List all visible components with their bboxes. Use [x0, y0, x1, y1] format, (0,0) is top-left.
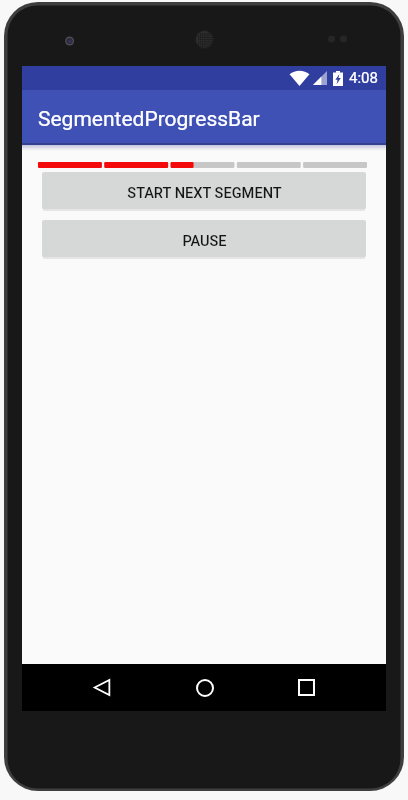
- staticText: 4:08: [349, 69, 378, 87]
- button[interactable]: START NEXT SEGMENT: [42, 172, 366, 209]
- button[interactable]: PAUSE: [42, 220, 366, 257]
- staticText: START NEXT SEGMENT: [127, 184, 282, 201]
- button[interactable]: Recent apps: [283, 664, 330, 711]
- staticText: SegmentedProgressBar: [38, 107, 260, 132]
- button[interactable]: Back: [78, 664, 125, 711]
- button[interactable]: Home: [181, 664, 228, 711]
- staticText: PAUSE: [182, 232, 227, 249]
